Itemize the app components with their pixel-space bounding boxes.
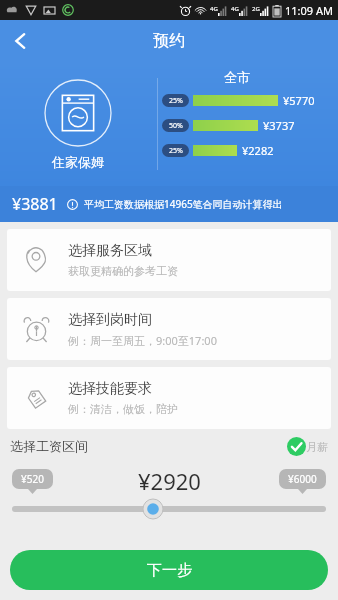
staticText: 例：清洁，做饭，陪护 (68, 402, 178, 416)
button[interactable]: 下一步 (10, 550, 328, 590)
staticText: ¥3881 (12, 193, 58, 215)
button[interactable]: Back (0, 20, 42, 62)
staticText: 平均工资数据根据14965笔合同自动计算得出 (84, 197, 283, 211)
staticText: 选择工资区间 (10, 438, 88, 454)
staticText: 例：周一至周五，9:00至17:00 (68, 333, 217, 348)
staticText: 25% (169, 146, 183, 156)
staticText: 选择到岗时间 (68, 311, 152, 329)
button[interactable]: 选择到岗时间 (7, 298, 331, 360)
staticText: 4G (231, 5, 239, 13)
button[interactable]: 选择服务区域 (7, 229, 331, 291)
staticText: 获取更精确的参考工资 (68, 264, 178, 278)
staticText: ¥3737 (263, 118, 295, 133)
staticText: 下一步 (147, 561, 192, 580)
staticText: 2G (252, 5, 260, 13)
staticText: 全市 (162, 69, 312, 85)
staticText: 25% (169, 96, 183, 106)
staticText: 月薪 (306, 440, 328, 454)
staticText: 50% (169, 121, 183, 131)
button[interactable]: 选择技能要求 (7, 367, 331, 429)
staticText: ¥520 (21, 472, 44, 486)
staticText: ¥2920 (138, 466, 201, 496)
staticText: 预约 (153, 31, 185, 51)
staticText: ¥6000 (288, 472, 317, 486)
staticText: ¥5770 (283, 93, 315, 108)
staticText: 住家保姆 (52, 154, 104, 170)
staticText: 选择服务区域 (68, 242, 152, 260)
staticText: ¥2282 (242, 143, 274, 158)
staticText: 11:09 AM (285, 3, 333, 18)
staticText: 选择技能要求 (68, 380, 152, 398)
staticText: 4G (210, 5, 218, 13)
button[interactable]: 月薪 (287, 437, 328, 456)
button[interactable] (0, 499, 338, 519)
